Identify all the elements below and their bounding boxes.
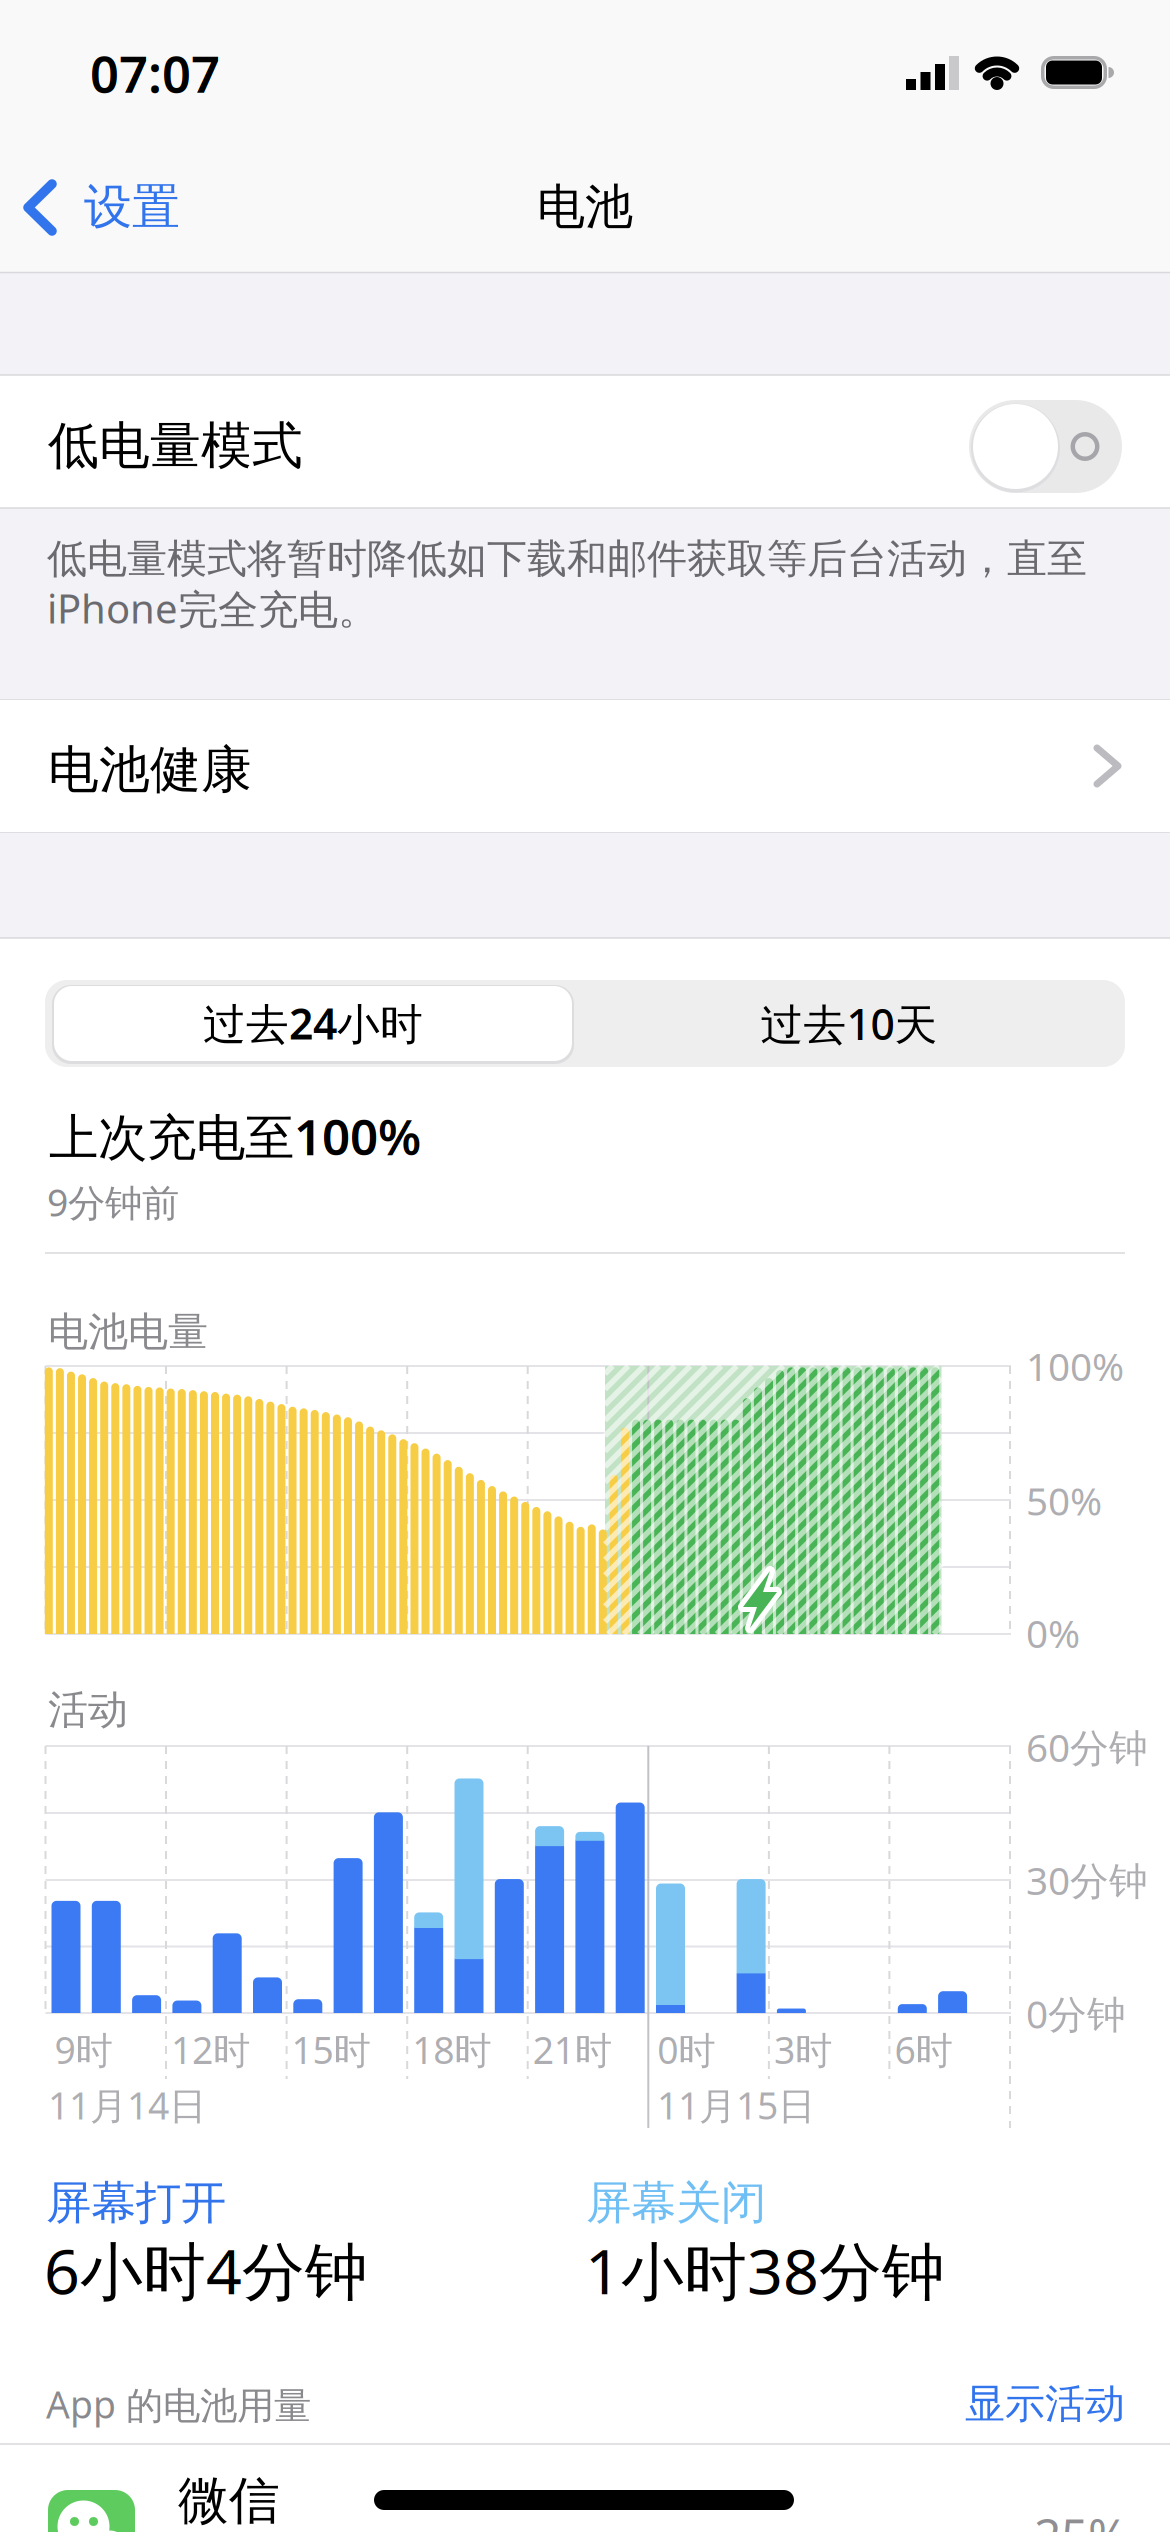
staticText: 低电量模式将暂时降低如下载和邮件获取等后台活动，直至	[47, 534, 1087, 583]
staticText: 60分钟	[1026, 1721, 1148, 1773]
staticText: 0%	[1026, 1607, 1080, 1659]
staticText: 过去10天	[760, 995, 937, 1052]
staticText: 100%	[1026, 1340, 1124, 1392]
button[interactable]: 过去10天	[589, 980, 1109, 1067]
staticText: 活动	[48, 1685, 128, 1734]
staticText: 屏幕关闭	[586, 2175, 766, 2231]
button[interactable]: 电池健康	[0, 700, 1170, 832]
staticText: 屏幕打开	[46, 2175, 226, 2231]
button[interactable]: 设置	[0, 157, 240, 257]
button[interactable]: 微信	[0, 2446, 1170, 2532]
staticText: 显示活动	[965, 2379, 1125, 2428]
staticText: 9分钟前	[47, 1177, 179, 1227]
staticText: 0分钟	[1026, 1988, 1126, 2039]
staticText: 0时	[657, 2025, 715, 2074]
staticText: 电池	[537, 177, 633, 236]
staticText: 低电量模式	[48, 415, 303, 477]
button[interactable]: 过去24小时	[54, 986, 572, 1061]
button[interactable]: 低电量模式	[969, 400, 1122, 493]
staticText: App 的电池用量	[46, 2379, 311, 2429]
staticText: iPhone完全充电。	[47, 581, 378, 635]
staticText: 21时	[533, 2025, 612, 2074]
staticText: 微信	[178, 2470, 280, 2532]
button[interactable]: 显示活动	[0, 0, 1170, 2532]
staticText: 上次充电至100%	[49, 1103, 421, 1169]
staticText: 设置	[84, 177, 180, 236]
staticText: 11月14日	[48, 2080, 206, 2130]
staticText: 18时	[412, 2025, 491, 2074]
staticText: 1小时38分钟	[585, 2228, 945, 2312]
staticText: 3时	[774, 2025, 832, 2074]
staticText: 12时	[171, 2025, 250, 2074]
staticText: 电池健康	[48, 739, 252, 801]
staticText: 30分钟	[1026, 1854, 1148, 1906]
staticText: 25%	[1034, 2503, 1128, 2532]
staticText: 11月15日	[657, 2080, 815, 2130]
staticText: 电池电量	[48, 1307, 208, 1356]
staticText: 50%	[1026, 1475, 1102, 1526]
staticText: 15时	[292, 2025, 371, 2074]
staticText: 9时	[54, 2025, 112, 2074]
staticText: 6小时4分钟	[44, 2228, 368, 2312]
staticText: 07:07	[90, 39, 220, 107]
staticText: 过去24小时	[203, 995, 423, 1051]
staticText: 6时	[894, 2025, 952, 2074]
